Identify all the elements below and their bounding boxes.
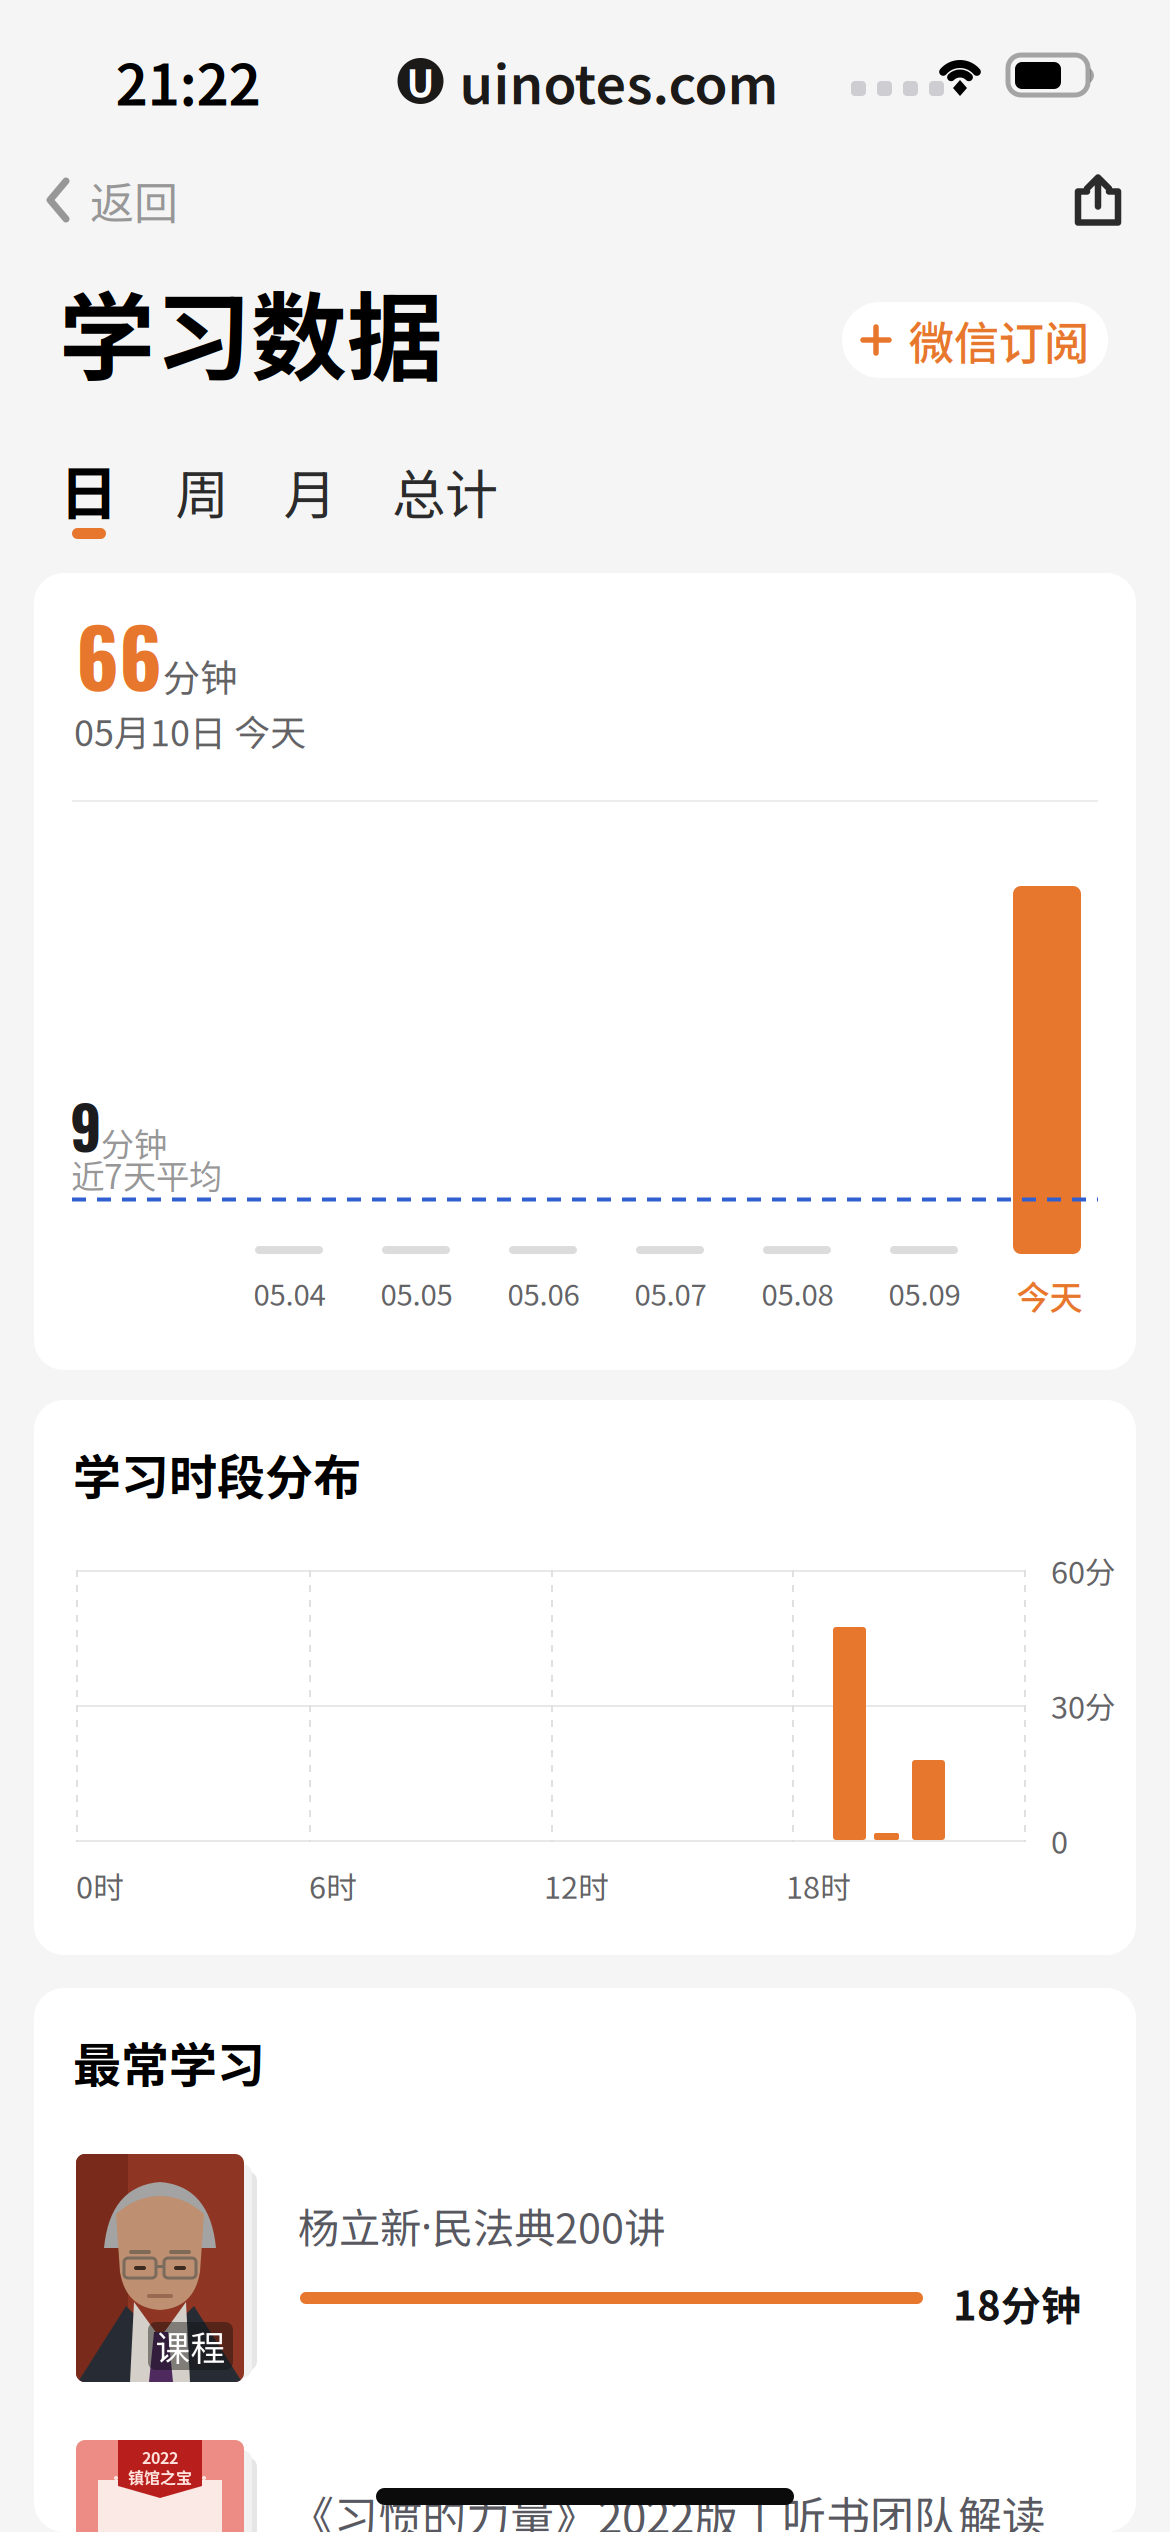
staticText: 21:22 <box>115 40 260 122</box>
staticText: 今天 <box>1016 1271 1082 1320</box>
staticText: 18分钟 <box>953 2274 1081 2332</box>
staticText: 课程 <box>155 2321 225 2371</box>
staticText: 月 <box>283 452 336 530</box>
button[interactable]: 课程 <box>34 1988 1136 2408</box>
button[interactable]: 2022 <box>34 1988 1136 2532</box>
button[interactable]: 月 <box>260 443 360 539</box>
staticText: 总计 <box>392 452 498 530</box>
button[interactable]: 返回 <box>0 150 216 250</box>
staticText: 18时 <box>786 1863 851 1908</box>
button[interactable]: 周 <box>152 443 252 539</box>
staticText: 0 <box>1051 1818 1068 1863</box>
staticText: 学习时段分布 <box>73 1439 361 1509</box>
staticText: 分钟 <box>163 648 237 703</box>
staticText: 05.06 <box>507 1272 579 1314</box>
button[interactable]: 微信订阅 <box>842 302 1108 378</box>
staticText: 9 <box>70 1082 102 1169</box>
staticText: 12时 <box>544 1863 609 1908</box>
staticText: 05月10日 今天 <box>74 704 306 756</box>
staticText: 《习惯的力量》2022版丨听书团队解读 <box>290 2483 1046 2532</box>
staticText: 05.07 <box>634 1272 706 1314</box>
button[interactable]: 日 <box>39 441 139 551</box>
staticText: 30分 <box>1051 1683 1116 1728</box>
staticText: 近7天平均 <box>71 1150 222 1199</box>
staticText: 60分 <box>1051 1548 1116 1593</box>
staticText: 0时 <box>76 1863 124 1908</box>
staticText: 分钟 <box>101 1118 167 1167</box>
staticText: 周 <box>175 452 228 530</box>
staticText: 日 <box>59 446 118 531</box>
staticText: 微信订阅 <box>909 307 1089 373</box>
staticText: 习惯的力量 <box>77 2522 242 2532</box>
staticText: U <box>406 54 434 108</box>
staticText: 最常学习 <box>73 2027 265 2097</box>
staticText: 05.08 <box>761 1272 833 1314</box>
staticText: 学习数据 <box>59 261 443 400</box>
staticText: 杨立新 <box>298 2196 421 2255</box>
staticText: 民法典200讲 <box>432 2196 665 2255</box>
staticText: 05.04 <box>253 1272 325 1314</box>
staticText: 05.05 <box>380 1272 452 1314</box>
staticText: 2022 <box>142 2445 178 2469</box>
staticText: · <box>421 2197 432 2254</box>
staticText: 6时 <box>309 1863 357 1908</box>
staticText: 66 <box>76 595 162 714</box>
staticText: 05.09 <box>888 1272 960 1314</box>
staticText: · 镇馆之宝 · <box>108 2465 212 2489</box>
staticText: 返回 <box>90 168 178 232</box>
button[interactable]: Share <box>1048 150 1148 250</box>
button[interactable]: 总计 <box>375 443 515 539</box>
staticText: uinotes.com <box>459 42 778 120</box>
